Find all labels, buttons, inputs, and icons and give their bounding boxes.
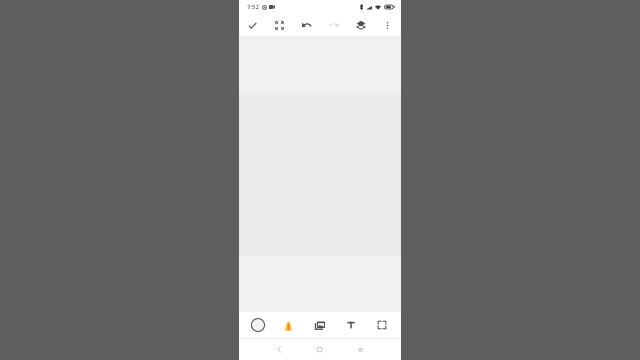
button[interactable]: More options	[374, 14, 401, 36]
staticText: 7:52	[247, 3, 259, 11]
button[interactable]: Recents	[340, 339, 381, 360]
button[interactable]: Done	[239, 14, 266, 36]
button[interactable]: Crop	[366, 312, 397, 338]
button[interactable]: Redo	[320, 14, 347, 36]
button[interactable]: Transform	[266, 14, 293, 36]
button[interactable]: Brush	[273, 312, 304, 338]
button[interactable]: Home	[299, 339, 340, 360]
button[interactable]: Gallery	[304, 312, 335, 338]
button[interactable]: Layers	[347, 14, 374, 36]
button[interactable]: Text	[335, 312, 366, 338]
button[interactable]: Color	[243, 312, 273, 338]
button[interactable]: Undo	[293, 14, 320, 36]
button[interactable]: Back	[259, 339, 299, 360]
